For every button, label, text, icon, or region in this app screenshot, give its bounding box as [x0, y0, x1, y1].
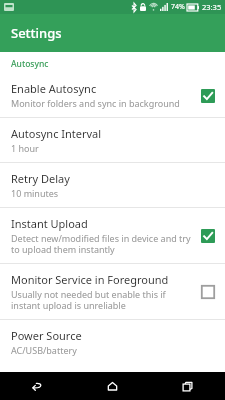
button[interactable]: Monitor Service in Foreground [0, 264, 225, 319]
staticText: Enable Autosync [11, 81, 97, 96]
staticText: Monitor Service in Foreground [11, 272, 169, 287]
button[interactable]: Checked [200, 88, 215, 103]
staticText: Autosync Interval [11, 126, 102, 141]
button[interactable]: Checked [200, 228, 215, 243]
button[interactable]: Recent apps [150, 372, 225, 400]
staticText: 10 minutes [11, 187, 59, 199]
staticText: Usually not needed but enable this if in… [11, 288, 192, 311]
staticText: Power Source [11, 328, 82, 343]
button[interactable]: Home [75, 372, 150, 400]
staticText: Monitor folders and sync in background [11, 97, 180, 109]
staticText: Retry Delay [11, 171, 70, 186]
button[interactable]: Power Source [0, 320, 225, 364]
staticText: Detect new/modified files in device and … [11, 232, 192, 255]
staticText: 74% [171, 2, 185, 12]
staticText: Settings [11, 24, 62, 42]
staticText: AC/USB/battery [11, 344, 77, 356]
button[interactable]: Unchecked [200, 284, 215, 299]
staticText: 1 hour [11, 142, 39, 154]
button[interactable]: Instant Upload [0, 208, 225, 263]
staticText: Instant Upload [11, 216, 88, 231]
button[interactable]: Retry Delay [0, 163, 225, 207]
button[interactable]: Enable Autosync [0, 73, 225, 117]
button[interactable]: Autosync Interval [0, 118, 225, 162]
staticText: 23:35 [202, 2, 222, 12]
staticText: Autosync [11, 58, 49, 70]
button[interactable]: Back [0, 372, 75, 400]
